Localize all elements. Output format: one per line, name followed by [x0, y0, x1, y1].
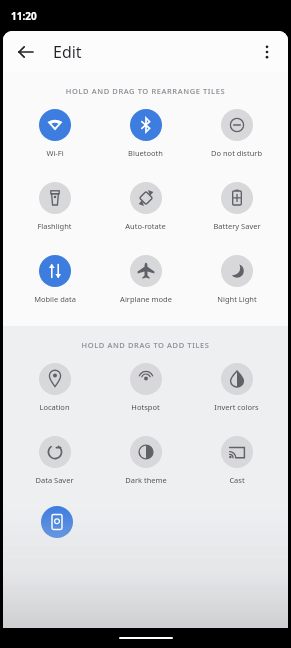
staticText: Edit [53, 41, 82, 63]
staticText: Airplane mode [120, 294, 172, 304]
staticText: Bluetooth [128, 148, 163, 158]
button[interactable]: More options [252, 37, 282, 67]
staticText: Invert colors [214, 402, 259, 412]
button[interactable]: Airplane mode [100, 255, 191, 304]
button[interactable]: Screen record [41, 506, 73, 538]
staticText: Dark theme [125, 475, 167, 485]
button[interactable]: Wi-Fi [9, 109, 100, 158]
button[interactable]: Dark theme [100, 436, 191, 485]
button[interactable]: Night Light [191, 255, 282, 304]
staticText: HOLD AND DRAG TO ADD TILES [3, 340, 288, 350]
staticText: 11:20 [11, 9, 37, 23]
button[interactable]: Cast [191, 436, 282, 485]
staticText: HOLD AND DRAG TO REARRANGE TILES [3, 86, 288, 96]
staticText: Hotspot [131, 402, 160, 412]
button[interactable]: Hotspot [100, 363, 191, 412]
button[interactable]: Bluetooth [100, 109, 191, 158]
button[interactable]: Back [11, 37, 41, 67]
button[interactable]: Auto-rotate [100, 182, 191, 231]
staticText: Cast [229, 475, 245, 485]
staticText: Location [39, 402, 70, 412]
button[interactable]: Mobile data [9, 255, 100, 304]
staticText: Mobile data [34, 294, 76, 304]
button[interactable]: Flashlight [9, 182, 100, 231]
button[interactable]: Invert colors [191, 363, 282, 412]
staticText: Do not disturb [211, 148, 262, 158]
staticText: Flashlight [37, 221, 72, 231]
staticText: Battery Saver [213, 221, 261, 231]
staticText: Data Saver [35, 475, 74, 485]
button[interactable]: Do not disturb [191, 109, 282, 158]
button[interactable]: Data Saver [9, 436, 100, 485]
staticText: Night Light [217, 294, 257, 304]
button[interactable]: Location [9, 363, 100, 412]
staticText: Wi-Fi [46, 148, 64, 158]
staticText: Auto-rotate [125, 221, 166, 231]
button[interactable]: Battery Saver [191, 182, 282, 231]
